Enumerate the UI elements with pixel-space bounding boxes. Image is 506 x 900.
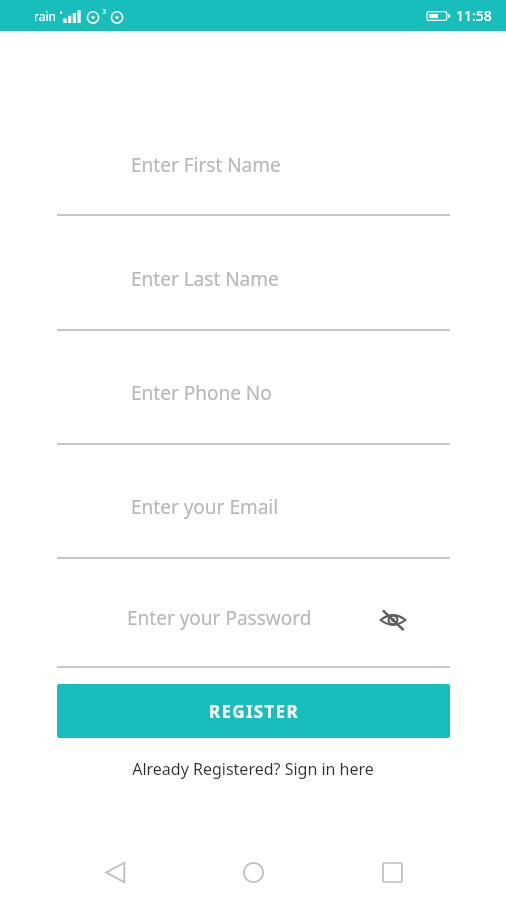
staticText: Enter your Email [131, 494, 279, 520]
staticText: Enter Last Name [131, 266, 279, 292]
button[interactable]: Enter Phone No [57, 374, 450, 447]
staticText: Enter your Password [127, 605, 312, 631]
button[interactable]: Recent apps [368, 848, 416, 896]
button[interactable]: Already Registered? Sign in here [0, 754, 506, 784]
staticText: 11:58 [456, 6, 492, 25]
button[interactable]: Toggle password visibility [373, 600, 413, 640]
button[interactable]: Enter Last Name [57, 260, 450, 333]
button[interactable]: Enter your Password [57, 599, 450, 670]
button[interactable]: Back [91, 848, 139, 896]
staticText: Enter First Name [131, 152, 281, 178]
staticText: Already Registered? Sign in here [132, 758, 374, 780]
staticText: REGISTER [209, 700, 299, 723]
button[interactable]: Home [229, 848, 277, 896]
button[interactable]: Enter First Name [57, 146, 450, 218]
staticText: 3 [102, 7, 107, 17]
staticText: rain [34, 8, 56, 24]
button[interactable]: Enter your Email [57, 488, 450, 561]
staticText: Enter Phone No [131, 380, 272, 406]
button[interactable]: REGISTER [57, 684, 450, 738]
